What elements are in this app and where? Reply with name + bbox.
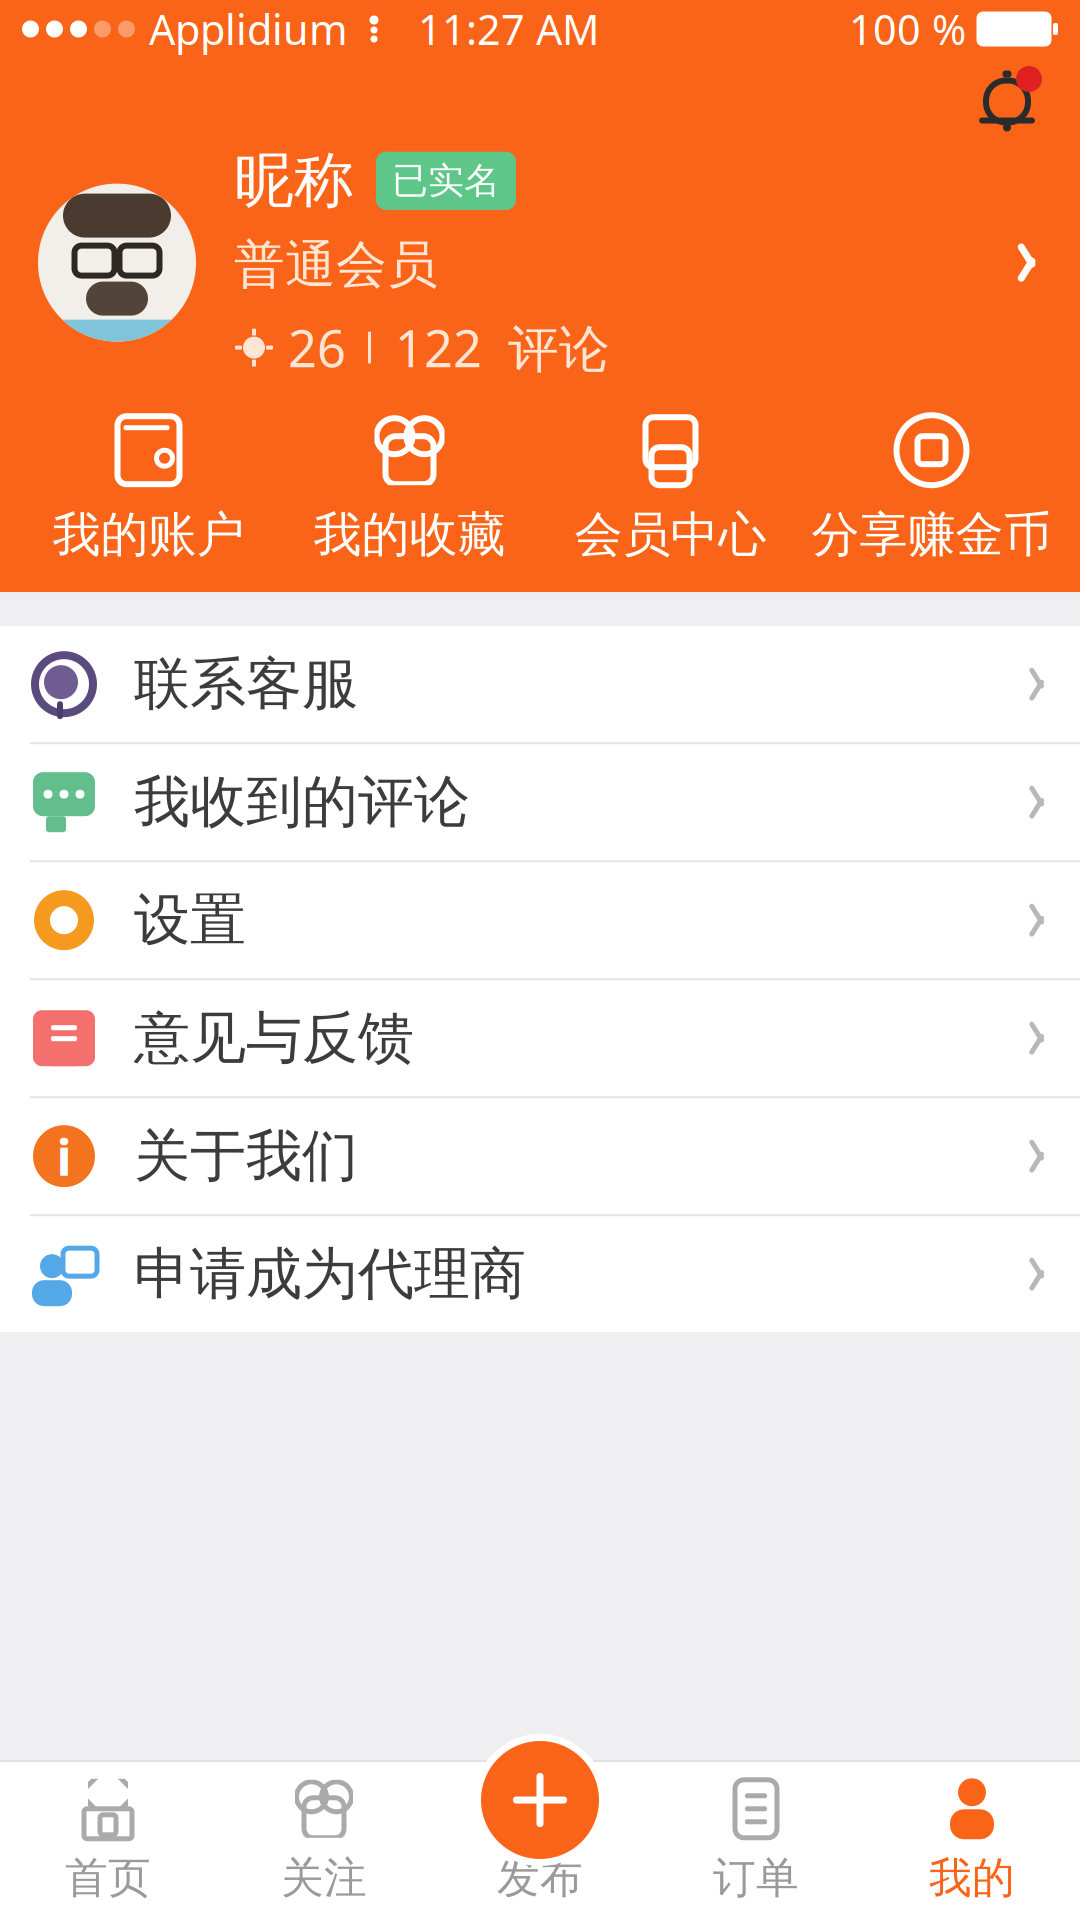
button[interactable]: 我的收藏: [279, 407, 540, 570]
staticText: 分享赚金币: [811, 505, 1051, 564]
staticText: 26: [288, 314, 346, 381]
button[interactable]: 发布: [432, 1762, 648, 1920]
staticText: 意见与反馈: [134, 1004, 414, 1073]
button[interactable]: Notifications: [964, 58, 1050, 144]
staticText: 我的账户: [52, 505, 244, 564]
staticText: 我的: [929, 1852, 1015, 1904]
button[interactable]: 首页: [0, 1762, 216, 1920]
staticText: 联系客服: [134, 650, 358, 719]
button[interactable]: 设置: [0, 862, 1080, 978]
button[interactable]: 意见与反馈: [0, 980, 1080, 1096]
staticText: 122 评论: [395, 314, 610, 381]
button[interactable]: 分享赚金币: [801, 407, 1062, 570]
button[interactable]: 关注: [216, 1762, 432, 1920]
staticText: Applidium: [149, 2, 348, 56]
button[interactable]: 订单: [648, 1762, 864, 1920]
staticText: 关注: [281, 1852, 367, 1904]
staticText: 100 %: [849, 2, 966, 56]
staticText: i: [56, 1122, 71, 1190]
button[interactable]: 昵称: [0, 144, 1080, 381]
button[interactable]: 联系客服: [0, 626, 1080, 742]
staticText: 发布: [497, 1852, 583, 1904]
button[interactable]: 会员中心: [540, 407, 801, 570]
staticText: 订单: [713, 1852, 799, 1904]
staticText: 11:27 AM: [418, 2, 599, 56]
button[interactable]: 我的账户: [18, 407, 279, 570]
button[interactable]: 我收到的评论: [0, 744, 1080, 860]
button[interactable]: 申请成为代理商: [0, 1216, 1080, 1332]
button[interactable]: i: [0, 1098, 1080, 1214]
staticText: 昵称: [234, 144, 354, 218]
staticText: 我收到的评论: [134, 768, 470, 837]
staticText: 普通会员: [234, 234, 438, 296]
staticText: 已实名: [392, 159, 500, 203]
staticText: 首页: [65, 1852, 151, 1904]
staticText: 申请成为代理商: [134, 1240, 526, 1309]
staticText: 会员中心: [574, 505, 766, 564]
button[interactable]: 发布: [474, 1734, 606, 1866]
button[interactable]: 我的: [864, 1762, 1080, 1920]
staticText: 关于我们: [134, 1122, 358, 1191]
staticText: 我的收藏: [313, 505, 505, 564]
staticText: 设置: [134, 886, 246, 955]
